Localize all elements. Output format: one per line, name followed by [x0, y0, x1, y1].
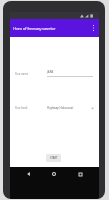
- staticText: Your name: [15, 72, 31, 76]
- button[interactable]: Recent apps: [75, 169, 85, 179]
- staticText: Hero of freeway warrior: [13, 25, 56, 31]
- staticText: START: [50, 156, 58, 160]
- button[interactable]: Home: [49, 169, 59, 179]
- button[interactable]: More options: [88, 23, 98, 33]
- staticText: Your book: [15, 106, 31, 110]
- button[interactable]: Your book: [10, 106, 99, 110]
- staticText: Highway Holocaust: [47, 106, 74, 110]
- staticText: JANE: [47, 70, 54, 74]
- button[interactable]: Back: [23, 169, 33, 179]
- button[interactable]: START: [46, 154, 61, 162]
